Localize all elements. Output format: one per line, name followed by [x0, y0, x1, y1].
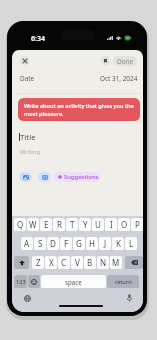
button[interactable]: Suggestions: [54, 172, 101, 182]
staticText: E: [44, 219, 49, 230]
button[interactable]: Bookmark: [101, 56, 110, 65]
staticText: Title: [20, 132, 36, 143]
button[interactable]: V: [71, 256, 83, 269]
button[interactable]: Key: [107, 275, 139, 288]
staticText: P: [135, 219, 140, 230]
button[interactable]: R: [53, 218, 65, 231]
button[interactable]: H: [86, 237, 98, 250]
staticText: S: [38, 238, 43, 249]
staticText: 6:34: [31, 34, 45, 44]
button[interactable]: Add photo: [19, 172, 32, 182]
button[interactable]: E: [40, 218, 52, 231]
button[interactable]: Q: [14, 218, 26, 231]
staticText: H: [89, 238, 95, 249]
button[interactable]: Key: [14, 275, 27, 288]
staticText: J: [104, 238, 107, 249]
button[interactable]: Key: [14, 256, 29, 269]
button[interactable]: G: [73, 237, 85, 250]
staticText: D: [50, 238, 56, 249]
button[interactable]: B: [84, 256, 96, 269]
button[interactable]: Change language: [24, 295, 31, 302]
staticText: L: [129, 238, 134, 249]
button[interactable]: Close: [20, 56, 29, 65]
button[interactable]: C: [58, 256, 70, 269]
staticText: Z: [36, 257, 41, 268]
button[interactable]: K: [112, 237, 124, 250]
staticText: Write about an activity that gives you t…: [24, 102, 134, 117]
button[interactable]: Z: [32, 256, 44, 269]
button[interactable]: M: [110, 256, 122, 269]
button[interactable]: S: [34, 237, 46, 250]
staticText: I: [110, 219, 113, 230]
staticText: O: [121, 219, 128, 230]
button[interactable]: Done: [113, 56, 137, 66]
button[interactable]: Key: [125, 256, 143, 269]
staticText: return: [115, 278, 132, 286]
button[interactable]: Y: [79, 218, 91, 231]
staticText: X: [49, 257, 54, 268]
staticText: V: [75, 257, 80, 268]
button[interactable]: O: [118, 218, 130, 231]
button[interactable]: D: [47, 237, 59, 250]
staticText: R: [57, 219, 62, 230]
staticText: Date: [20, 74, 35, 83]
button[interactable]: L: [125, 237, 137, 250]
staticText: U: [95, 219, 101, 230]
button[interactable]: N: [97, 256, 109, 269]
staticText: B: [87, 257, 93, 268]
staticText: Suggestions: [64, 173, 99, 181]
staticText: Y: [83, 219, 88, 230]
staticText: space: [65, 278, 82, 286]
staticText: Done: [117, 57, 134, 66]
staticText: Oct 31, 2024: [100, 74, 138, 83]
staticText: M: [112, 257, 120, 268]
staticText: W: [29, 219, 37, 230]
button[interactable]: I: [105, 218, 117, 231]
staticText: T: [70, 219, 75, 230]
button[interactable]: A: [21, 237, 33, 250]
button[interactable]: Dictate: [126, 294, 133, 302]
staticText: F: [64, 238, 69, 249]
staticText: A: [24, 238, 30, 249]
button[interactable]: F: [60, 237, 72, 250]
button[interactable]: W: [27, 218, 39, 231]
staticText: N: [100, 257, 107, 268]
button[interactable]: Write about an activity that gives you t…: [18, 98, 140, 121]
button[interactable]: space: [41, 275, 106, 288]
button[interactable]: J: [99, 237, 111, 250]
button[interactable]: X: [45, 256, 57, 269]
button[interactable]: Key: [28, 275, 40, 288]
button[interactable]: P: [131, 218, 143, 231]
staticText: C: [61, 257, 67, 268]
staticText: Writing: [20, 148, 40, 156]
button[interactable]: U: [92, 218, 104, 231]
staticText: 123: [16, 278, 26, 286]
button[interactable]: Scan document: [38, 172, 51, 182]
staticText: K: [116, 238, 121, 249]
button[interactable]: T: [66, 218, 78, 231]
staticText: G: [76, 238, 82, 249]
staticText: Q: [17, 219, 24, 230]
